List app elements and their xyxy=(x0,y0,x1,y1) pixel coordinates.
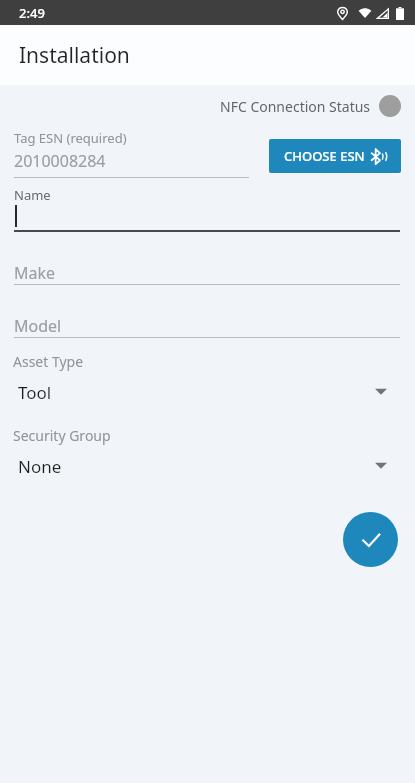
staticText: CHOOSE ESN xyxy=(284,147,365,165)
staticText: Name xyxy=(14,186,51,204)
staticText: Asset Type xyxy=(13,352,84,371)
staticText: 2010008284 xyxy=(14,150,106,172)
staticText: Tool xyxy=(18,381,52,404)
staticText: Tag ESN (required) xyxy=(14,129,127,147)
staticText: NFC Connection Status xyxy=(220,97,371,116)
staticText: Installation xyxy=(19,41,130,70)
staticText: Make xyxy=(14,262,56,284)
button[interactable]: Save xyxy=(343,512,398,567)
button[interactable] xyxy=(0,373,415,407)
button[interactable] xyxy=(0,447,415,481)
staticText: None xyxy=(18,455,62,478)
staticText: Security Group xyxy=(13,426,111,445)
button[interactable]: CHOOSE ESN xyxy=(269,139,401,173)
staticText: 2:49 xyxy=(19,4,45,22)
button[interactable]: NFC Connection Status xyxy=(220,95,401,117)
staticText: Model xyxy=(14,315,62,337)
